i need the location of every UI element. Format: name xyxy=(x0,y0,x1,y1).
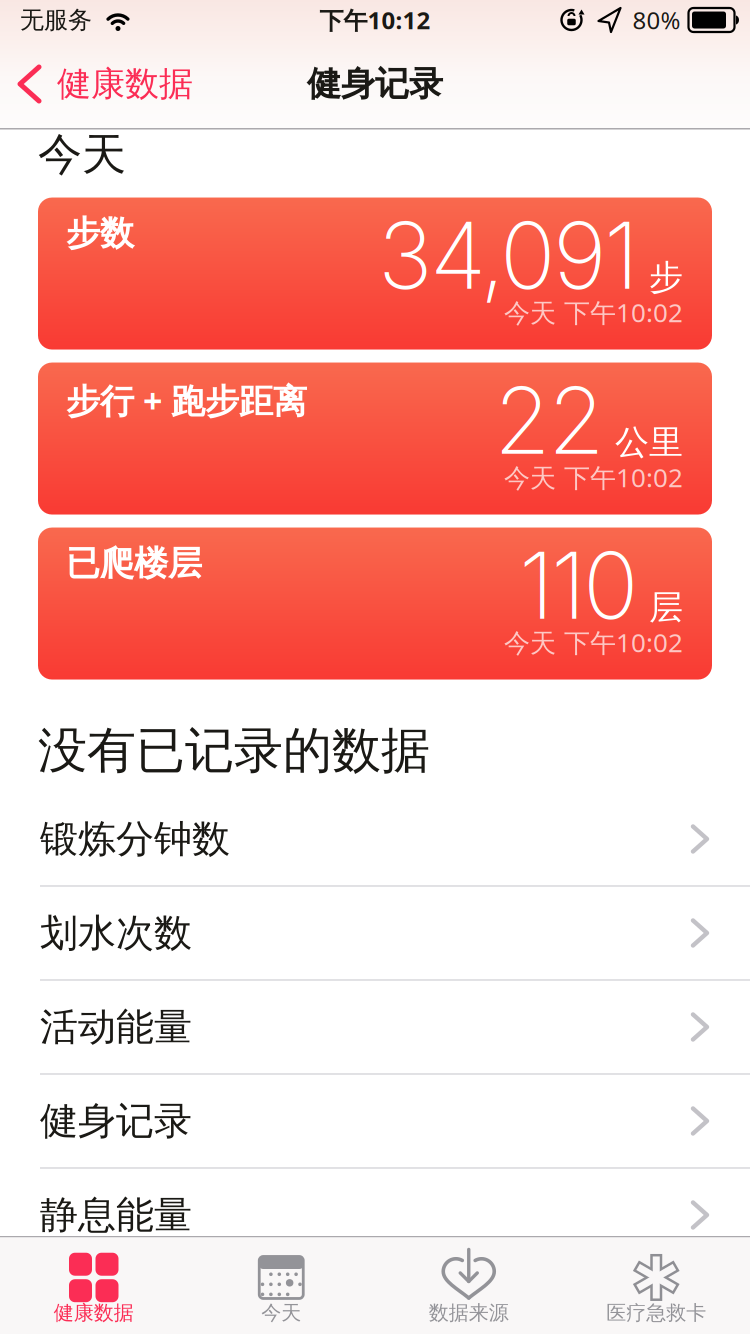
staticText: 层 xyxy=(649,586,683,628)
staticText: 公里 xyxy=(615,421,683,463)
staticText: 划水次数 xyxy=(40,910,192,956)
staticText: 34,091 xyxy=(378,200,639,311)
staticText: 80% xyxy=(632,4,680,36)
button[interactable]: 数据来源 xyxy=(375,1239,562,1332)
button[interactable]: 静息能量 xyxy=(0,1169,750,1263)
staticText: 锻炼分钟数 xyxy=(40,816,230,862)
staticText: 没有已记录的数据 xyxy=(38,720,430,781)
button[interactable]: 锻炼分钟数 xyxy=(0,793,750,887)
staticText: 110 xyxy=(519,530,639,641)
staticText: 静息能量 xyxy=(40,1192,192,1238)
staticText: 步 xyxy=(649,256,683,298)
staticText: 健康数据 xyxy=(57,63,193,105)
button[interactable]: 医疗急救卡 xyxy=(562,1239,750,1332)
staticText: 今天 下午10:02 xyxy=(504,625,683,659)
staticText: 今天 xyxy=(261,1300,301,1325)
staticText: 步数 xyxy=(66,213,134,254)
staticText: 已爬楼层 xyxy=(66,543,202,584)
button[interactable]: 健康数据 xyxy=(18,63,193,105)
staticText: 步行 + 跑步距离 xyxy=(66,378,307,423)
staticText: 健身记录 xyxy=(307,63,443,105)
button[interactable]: 健身记录 xyxy=(0,1075,750,1169)
staticText: 健身记录 xyxy=(40,1098,192,1144)
staticText: 医疗急救卡 xyxy=(606,1300,706,1325)
staticText: 数据来源 xyxy=(429,1300,509,1325)
staticText: 无服务 xyxy=(20,5,92,35)
staticText: 今天 下午10:02 xyxy=(504,460,683,494)
staticText: 健康数据 xyxy=(54,1300,134,1325)
staticText: 活动能量 xyxy=(40,1004,192,1050)
button[interactable]: 活动能量 xyxy=(0,981,750,1075)
button[interactable]: 健康数据 xyxy=(0,1239,187,1332)
staticText: 今天 xyxy=(38,127,126,181)
staticText: 今天 下午10:02 xyxy=(504,295,683,329)
button[interactable]: 划水次数 xyxy=(0,887,750,981)
button[interactable]: 今天 xyxy=(187,1239,375,1332)
staticText: 下午10:12 xyxy=(319,4,430,36)
staticText: 22 xyxy=(494,365,605,476)
